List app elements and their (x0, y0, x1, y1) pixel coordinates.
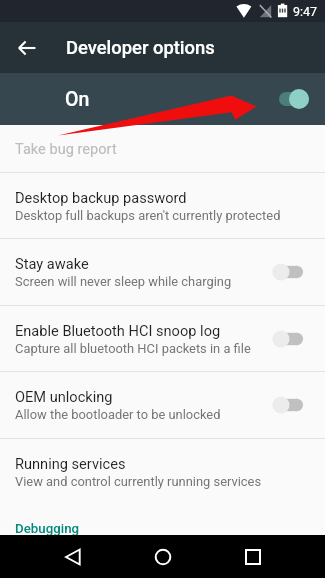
staticText: Developer options (66, 37, 215, 59)
staticText: Enable Bluetooth HCI snoop log (15, 322, 221, 339)
staticText: Stay awake (15, 255, 89, 272)
staticText: Desktop backup password (15, 189, 187, 206)
staticText: 9:47 (293, 4, 318, 19)
button[interactable]: OEM unlocking (0, 372, 325, 438)
staticText: Allow the bootloader to be unlocked (15, 407, 221, 422)
staticText: View and control currently running servi… (15, 474, 262, 489)
button[interactable]: Enable Bluetooth HCI snoop log (0, 306, 325, 371)
button[interactable]: Navigate up (10, 31, 43, 64)
staticText: On (65, 88, 90, 111)
staticText: OEM unlocking (15, 388, 113, 405)
button[interactable]: Back (50, 535, 95, 578)
staticText: Screen will never sleep while charging (15, 274, 232, 289)
button[interactable]: On (0, 73, 325, 125)
staticText: Capture all bluetooth HCI packets in a f… (15, 341, 251, 356)
button[interactable]: Home (140, 535, 185, 578)
staticText: Running services (15, 455, 126, 472)
button[interactable]: Running services (0, 439, 325, 505)
staticText: Debugging (15, 521, 80, 535)
button[interactable]: Take bug report (0, 125, 325, 172)
staticText: Desktop full backups aren't currently pr… (15, 208, 281, 223)
button[interactable]: Desktop backup password (0, 173, 325, 238)
staticText: Take bug report (15, 140, 117, 157)
button[interactable]: Recent apps (230, 535, 275, 578)
button[interactable]: Stay awake (0, 239, 325, 305)
